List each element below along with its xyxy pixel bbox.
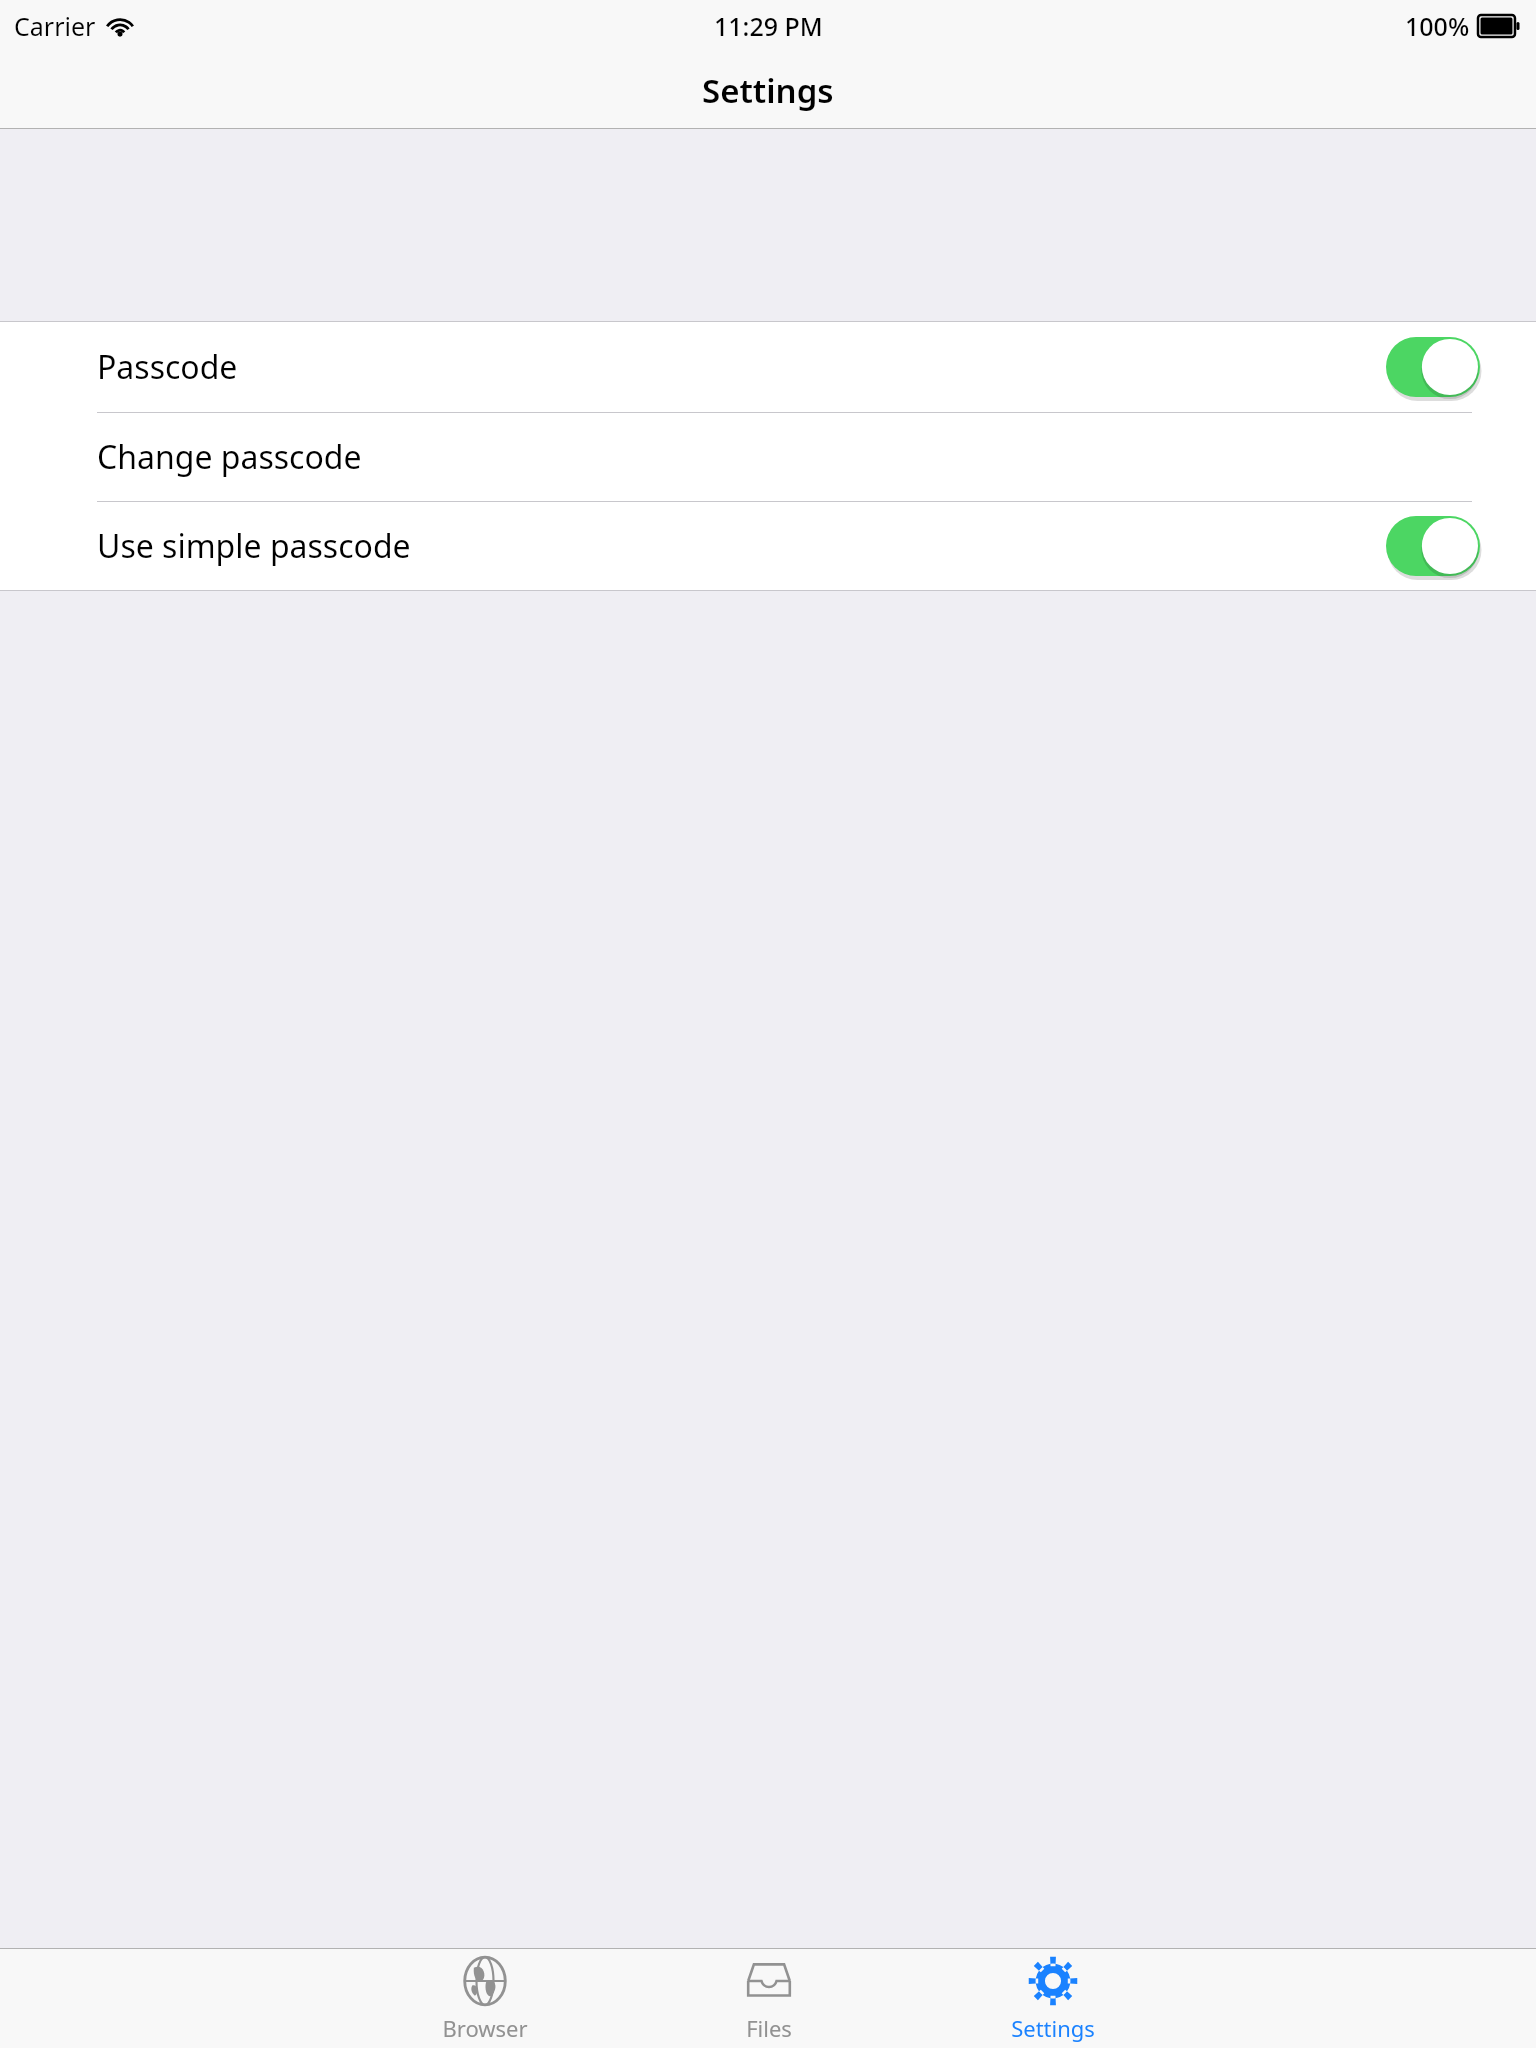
staticText: Files (746, 2013, 792, 2043)
staticText: 11:29 PM (714, 9, 823, 43)
button[interactable]: Passcode (0, 322, 1536, 412)
button[interactable]: Toggle (1386, 336, 1480, 398)
staticText: Change passcode (97, 435, 362, 479)
staticText: Browser (442, 2013, 528, 2043)
button[interactable]: Toggle (1386, 515, 1480, 577)
staticText: Passcode (97, 345, 238, 389)
staticText: Settings (1011, 2013, 1095, 2043)
staticText: 100% (1405, 9, 1470, 43)
button[interactable]: Browser (342, 1949, 627, 2048)
staticText: Use simple passcode (97, 524, 411, 568)
button[interactable]: Settings (911, 1949, 1195, 2048)
button[interactable]: Use simple passcode (0, 502, 1536, 590)
staticText: Carrier (14, 9, 96, 43)
button[interactable]: Change passcode (0, 413, 1536, 501)
button[interactable]: Files (627, 1949, 911, 2048)
staticText: Settings (702, 68, 834, 113)
